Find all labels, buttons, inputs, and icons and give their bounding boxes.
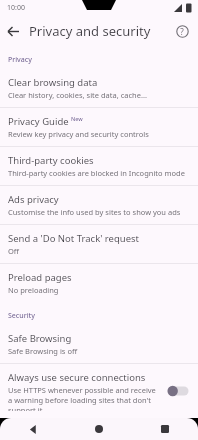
staticText: New bbox=[71, 115, 83, 122]
staticText: Off bbox=[8, 246, 20, 256]
staticText: Privacy bbox=[8, 55, 32, 65]
button[interactable]: Ads privacy bbox=[0, 186, 198, 224]
button[interactable]: Preload pages bbox=[0, 264, 198, 302]
staticText: Clear history, cookies, site data, cache… bbox=[8, 90, 147, 100]
button[interactable]: Always use secure connections bbox=[0, 364, 198, 418]
staticText: Safe Browsing is off bbox=[8, 346, 78, 356]
staticText: Always use secure connections bbox=[8, 371, 146, 384]
staticText: Ads privacy bbox=[8, 193, 59, 206]
button[interactable]: Back bbox=[0, 418, 66, 440]
staticText: Privacy and security bbox=[29, 22, 169, 40]
staticText: No preloading bbox=[8, 285, 59, 295]
staticText: Privacy Guide bbox=[8, 115, 69, 128]
staticText: Clear browsing data bbox=[8, 76, 98, 89]
button[interactable]: Clear browsing data bbox=[0, 69, 198, 107]
button[interactable]: Back bbox=[0, 18, 26, 44]
button[interactable]: Home bbox=[66, 418, 132, 440]
button[interactable]: Always use secure connections toggle bbox=[166, 383, 190, 399]
staticText: Safe Browsing bbox=[8, 332, 72, 345]
button[interactable]: Recent apps bbox=[132, 418, 198, 440]
staticText: Third-party cookies bbox=[8, 154, 94, 167]
button[interactable]: Safe Browsing bbox=[0, 325, 198, 363]
staticText: Security bbox=[8, 311, 35, 321]
staticText: Third-party cookies are blocked in Incog… bbox=[8, 168, 185, 178]
staticText: 10:00 bbox=[7, 3, 25, 13]
staticText: ? bbox=[180, 26, 184, 37]
button[interactable]: Help bbox=[169, 18, 195, 44]
staticText: Preload pages bbox=[8, 271, 72, 284]
staticText: Review key privacy and security controls bbox=[8, 129, 149, 139]
button[interactable]: Third-party cookies bbox=[0, 147, 198, 185]
button[interactable]: Send a 'Do Not Track' request bbox=[0, 225, 198, 263]
staticText: Customise the info used by sites to show… bbox=[8, 207, 181, 217]
button[interactable]: Privacy Guide bbox=[0, 108, 198, 146]
staticText: Send a 'Do Not Track' request bbox=[8, 232, 139, 245]
staticText: Use HTTPS whenever possible and receive … bbox=[8, 385, 160, 411]
